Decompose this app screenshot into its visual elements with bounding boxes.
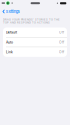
button[interactable]: Default <box>3 27 67 37</box>
staticText: Auto <box>6 40 13 44</box>
button[interactable]: Auto <box>3 37 67 47</box>
button[interactable]: Link <box>3 47 67 57</box>
staticText: Off <box>59 30 64 34</box>
staticText: Off <box>59 40 64 44</box>
staticText: Link <box>6 50 13 54</box>
staticText: DRAG YOUR FRIENDS' STORIES TO THE TOP AN… <box>3 18 60 24</box>
staticText: Settings <box>6 9 20 14</box>
staticText: Off <box>59 50 64 54</box>
button[interactable]: Settings <box>0 8 23 15</box>
staticText: Default <box>6 30 17 34</box>
